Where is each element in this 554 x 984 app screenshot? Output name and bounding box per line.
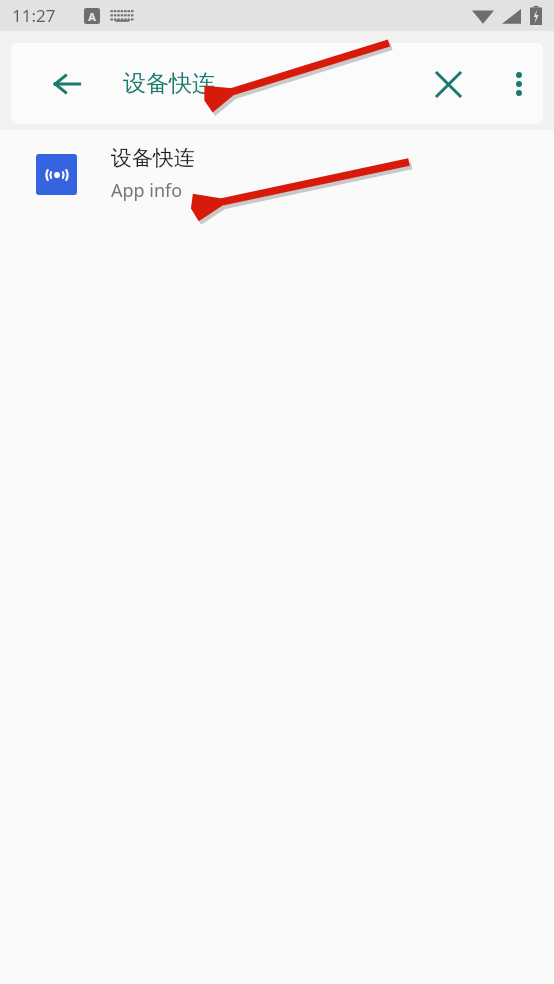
staticText: 11:27	[12, 4, 56, 27]
button[interactable]: Clear	[420, 56, 476, 112]
staticText: 设备快连	[111, 145, 195, 171]
staticText: 设备快连	[123, 69, 215, 98]
button[interactable]: Back	[39, 56, 95, 112]
button[interactable]: More options	[491, 56, 543, 112]
staticText: App info	[111, 178, 183, 203]
staticText: A	[88, 9, 96, 24]
button[interactable]: 设备快连	[0, 130, 554, 218]
